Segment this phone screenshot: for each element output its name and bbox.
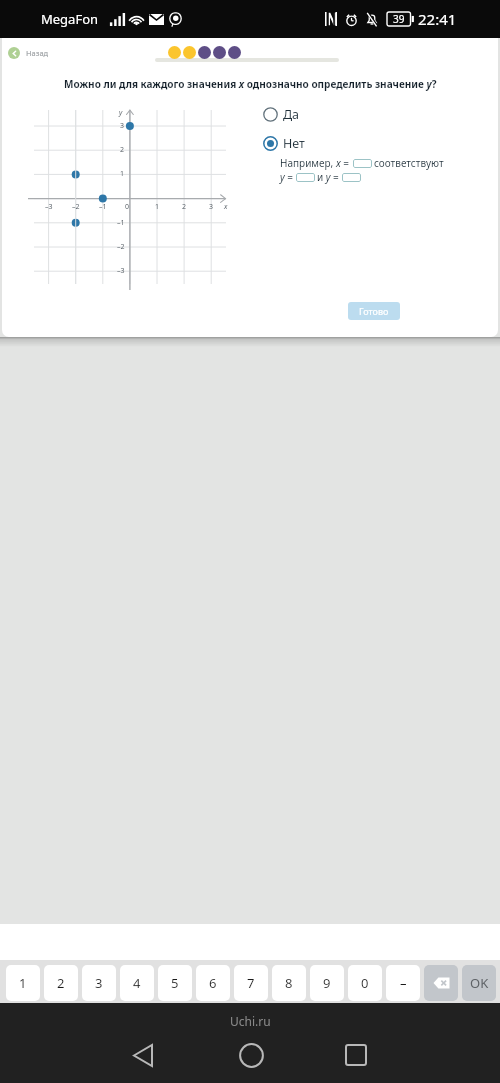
staticText: соответствуют [374,156,444,170]
staticText: OK [470,974,489,992]
button[interactable]: 9 [310,965,344,1001]
staticText: 6 [209,974,217,992]
staticText: –3 [117,266,125,276]
button[interactable]: 8 [272,965,306,1001]
button[interactable]: Готово [348,302,400,320]
staticText: –2 [117,242,125,252]
staticText: –3 [45,202,53,212]
staticText: 3 [209,202,214,212]
staticText: 4 [133,974,141,992]
button[interactable]: Назад [128,1040,158,1070]
button[interactable]: 7 [234,965,268,1001]
staticText: – [400,974,407,992]
staticText: 22:41 [418,9,457,29]
button[interactable]: 0 [348,965,382,1001]
staticText: 3 [120,121,125,131]
staticText: y = [280,170,293,184]
button[interactable]: Обзор [341,1040,371,1070]
button[interactable]: – [386,965,420,1001]
staticText: 3 [95,974,103,992]
button[interactable]: 5 [158,965,192,1001]
staticText: 2 [120,145,125,155]
button[interactable]: Да [263,105,300,124]
staticText: –2 [72,202,80,212]
staticText: –1 [117,218,125,228]
button[interactable]: Нет [263,134,305,153]
staticText: Готово [359,305,389,317]
button[interactable]: Домой [236,1040,266,1070]
staticText: 0 [125,202,130,212]
staticText: 1 [19,974,27,992]
button[interactable]: 1 [6,965,40,1001]
button[interactable]: 6 [196,965,230,1001]
button[interactable]: 4 [120,965,154,1001]
staticText: Нет [283,135,305,152]
staticText: Можно ли для каждого значения x однознач… [64,77,437,91]
button[interactable]: 2 [44,965,78,1001]
staticText: 9 [323,974,331,992]
button[interactable]: Удалить [424,965,458,1001]
staticText: 5 [171,974,179,992]
staticText: 0 [361,974,369,992]
staticText: y [119,108,123,118]
staticText: MegaFon [41,10,99,28]
button[interactable]: Поле ввода [353,159,372,168]
staticText: –1 [99,202,107,212]
staticText: 7 [247,974,255,992]
button[interactable]: 3 [82,965,116,1001]
staticText: Например, x = [280,156,350,170]
staticText: x [224,202,228,212]
button[interactable]: Поле ввода [342,173,361,182]
staticText: 2 [57,974,65,992]
button[interactable]: OK [462,965,496,1001]
staticText: 2 [182,202,187,212]
button[interactable]: Поле ввода [296,173,315,182]
button[interactable]: Назад [6,43,51,63]
staticText: Назад [26,48,49,58]
staticText: и y = [317,170,339,184]
staticText: 1 [120,169,125,179]
staticText: Да [283,106,300,123]
staticText: 1 [155,202,160,212]
staticText: 39 [393,12,405,26]
staticText: 8 [285,974,293,992]
staticText: Uchi.ru [230,1013,271,1029]
